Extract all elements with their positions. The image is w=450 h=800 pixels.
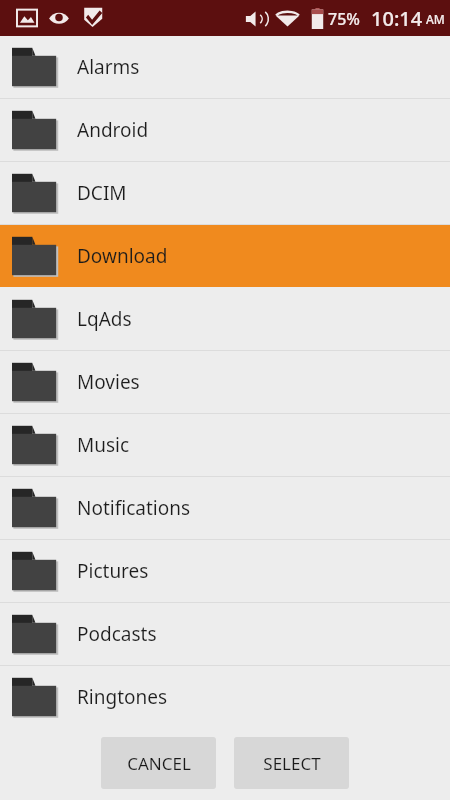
button[interactable]: Notifications [0, 477, 450, 539]
button[interactable]: Alarms [0, 36, 450, 98]
other: Tasks [82, 6, 104, 28]
button[interactable]: DCIM [0, 162, 450, 224]
staticText: Ringtones [77, 684, 168, 710]
staticText: 10:14 [371, 5, 423, 32]
button[interactable]: Podcasts [0, 603, 450, 665]
other: Eye [48, 7, 70, 29]
button[interactable]: SELECT [234, 737, 349, 789]
staticText: AM [426, 11, 445, 27]
staticText: LqAds [77, 306, 132, 332]
staticText: Pictures [77, 558, 149, 584]
staticText: CANCEL [127, 752, 191, 775]
other: Screenshot [16, 7, 38, 29]
button[interactable]: Android [0, 99, 450, 161]
staticText: Android [77, 117, 149, 143]
staticText: Alarms [77, 54, 140, 80]
staticText: 75% [328, 8, 360, 30]
staticText: DCIM [77, 180, 127, 206]
button[interactable]: Music [0, 414, 450, 476]
button[interactable]: LqAds [0, 288, 450, 350]
button[interactable]: Pictures [0, 540, 450, 602]
staticText: Notifications [77, 495, 191, 521]
button[interactable]: CANCEL [101, 737, 216, 789]
other: Wi-Fi [275, 10, 300, 28]
button[interactable]: Download [0, 225, 450, 287]
staticText: Download [77, 243, 168, 269]
button[interactable]: Movies [0, 351, 450, 413]
other: Battery [311, 8, 324, 29]
button[interactable]: Ringtones [0, 666, 450, 728]
staticText: SELECT [263, 752, 321, 775]
other: Volume [245, 10, 267, 28]
staticText: Music [77, 432, 130, 458]
staticText: Podcasts [77, 621, 157, 647]
staticText: Movies [77, 369, 140, 395]
